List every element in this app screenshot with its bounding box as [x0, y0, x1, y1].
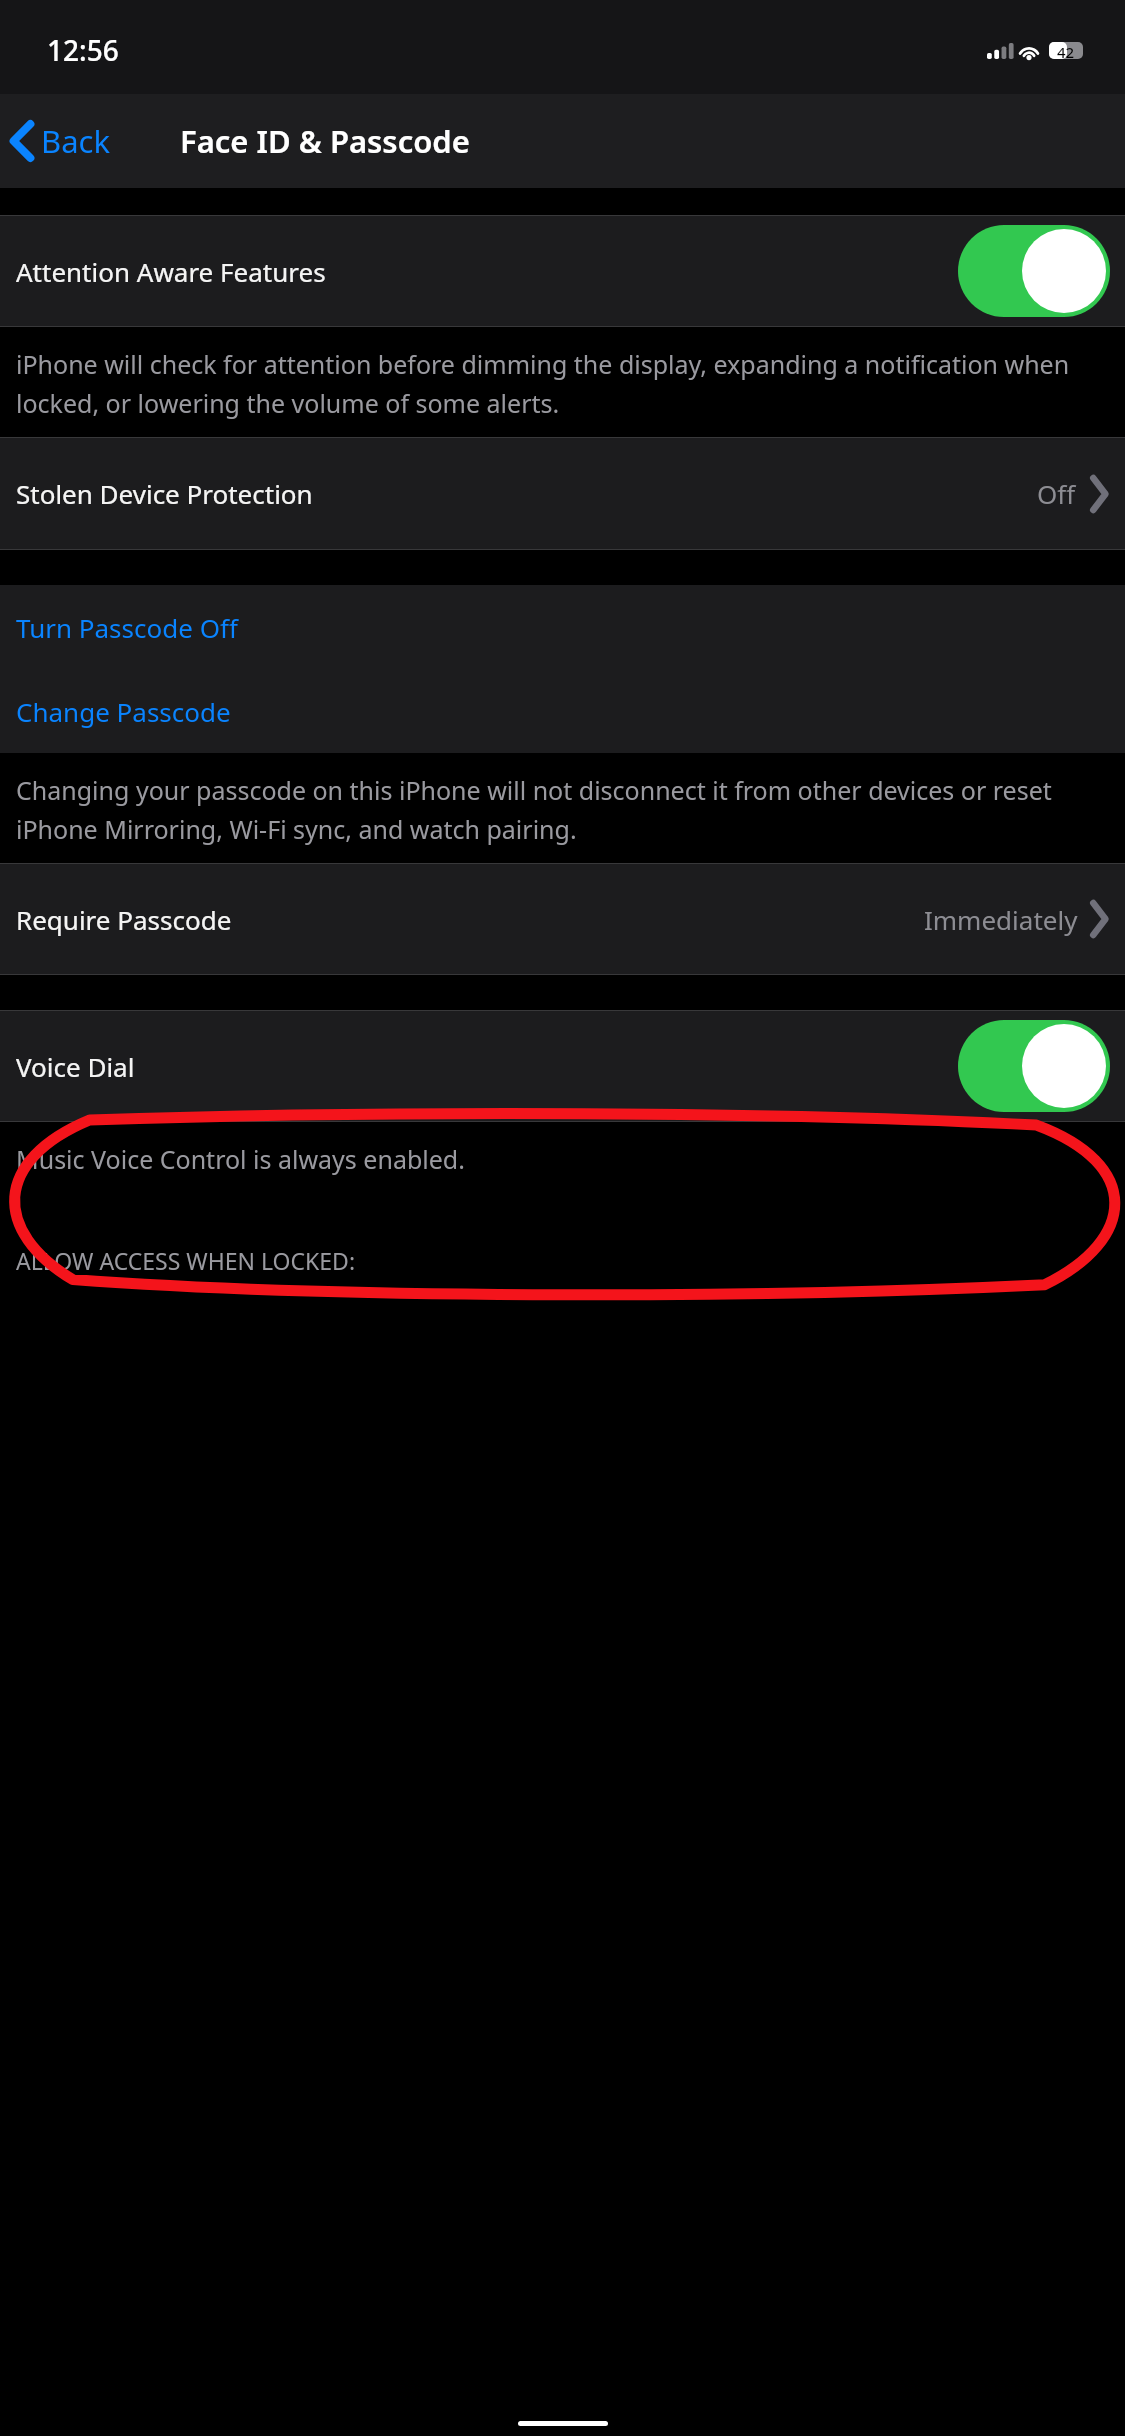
staticText: Change Passcode: [16, 694, 231, 729]
staticText: Immediately: [924, 902, 1078, 937]
button[interactable]: Back: [0, 114, 120, 168]
button[interactable]: Toggle: [958, 1020, 1110, 1112]
button[interactable]: Voice Dial: [0, 1010, 1125, 1122]
staticText: Face ID & Passcode: [180, 120, 470, 162]
staticText: Changing your passcode on this iPhone wi…: [16, 773, 1109, 846]
staticText: Music Voice Control is always enabled.: [16, 1142, 465, 1176]
other: More: [1090, 478, 1108, 510]
staticText: Off: [1037, 476, 1076, 511]
button[interactable]: Change Passcode: [0, 669, 1125, 753]
staticText: Require Passcode: [16, 902, 232, 937]
staticText: Stolen Device Protection: [16, 476, 313, 511]
button[interactable]: Require Passcode: [0, 863, 1125, 975]
staticText: 12:56: [47, 31, 119, 69]
button[interactable]: Attention Aware Features: [0, 215, 1125, 327]
staticText: Back: [41, 120, 110, 162]
staticText: 42: [1057, 42, 1075, 59]
staticText: Turn Passcode Off: [16, 610, 238, 645]
staticText: ALLOW ACCESS WHEN LOCKED:: [16, 1245, 356, 1276]
button[interactable]: Stolen Device Protection: [0, 437, 1125, 550]
staticText: Attention Aware Features: [16, 254, 326, 289]
button[interactable]: Toggle: [958, 225, 1110, 317]
button[interactable]: Turn Passcode Off: [0, 585, 1125, 669]
staticText: iPhone will check for attention before d…: [16, 347, 1109, 420]
other: More: [1090, 903, 1108, 935]
staticText: Voice Dial: [16, 1049, 135, 1084]
